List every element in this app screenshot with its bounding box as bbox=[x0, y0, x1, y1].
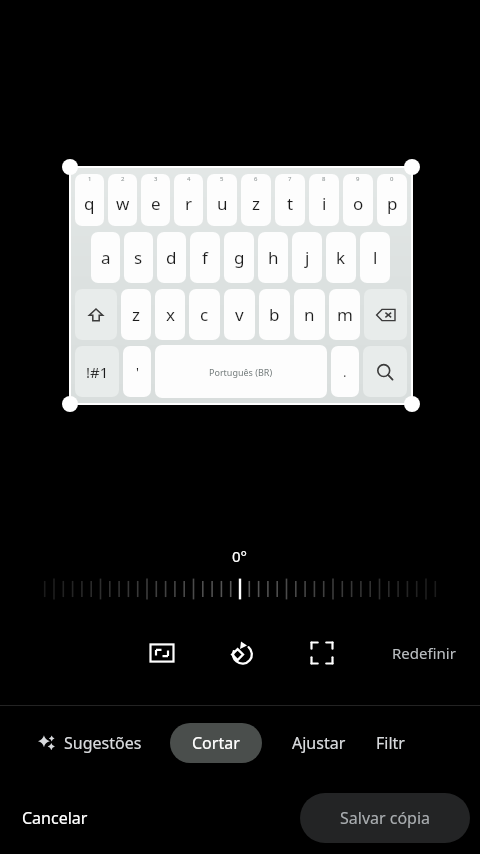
staticText: Ajustar bbox=[292, 732, 346, 754]
staticText: !#1 bbox=[86, 362, 109, 382]
staticText: Sugestões bbox=[64, 732, 142, 754]
other: Search bbox=[376, 363, 394, 381]
staticText: t bbox=[287, 192, 294, 215]
button[interactable]: m bbox=[329, 289, 360, 340]
button[interactable]: 9 bbox=[343, 174, 373, 226]
button[interactable]: 7 bbox=[275, 174, 305, 226]
button[interactable]: h bbox=[258, 232, 288, 283]
staticText: 0° bbox=[232, 546, 248, 566]
button[interactable]: l bbox=[360, 232, 390, 283]
button[interactable]: j bbox=[292, 232, 322, 283]
button[interactable]: !#1 bbox=[75, 346, 119, 397]
button[interactable]: 4 bbox=[174, 174, 203, 226]
button[interactable]: v bbox=[224, 289, 255, 340]
button[interactable]: s bbox=[124, 232, 153, 283]
staticText: w bbox=[116, 192, 130, 215]
staticText: Cortar bbox=[192, 732, 240, 754]
button[interactable]: Auto straighten bbox=[300, 631, 344, 675]
staticText: 2 bbox=[121, 175, 125, 183]
staticText: Salvar cópia bbox=[340, 807, 431, 829]
button[interactable]: Salvar cópia bbox=[300, 793, 470, 843]
staticText: Cancelar bbox=[22, 807, 88, 829]
button[interactable]: Backspace bbox=[364, 289, 407, 340]
staticText: 9 bbox=[356, 175, 360, 183]
staticText: Filtr bbox=[376, 732, 405, 754]
button[interactable]: k bbox=[326, 232, 356, 283]
staticText: d bbox=[166, 246, 177, 269]
staticText: l bbox=[373, 246, 378, 269]
staticText: Português (BR) bbox=[209, 366, 273, 378]
staticText: Redefinir bbox=[392, 643, 456, 663]
staticText: n bbox=[304, 303, 315, 326]
button[interactable]: Português (BR) bbox=[155, 345, 327, 398]
button[interactable]: Cancelar bbox=[10, 797, 100, 839]
staticText: 5 bbox=[220, 175, 224, 183]
button[interactable]: Shift bbox=[75, 289, 117, 340]
button[interactable]: x bbox=[155, 289, 185, 340]
button[interactable]: 6 bbox=[241, 174, 271, 226]
other: Backspace bbox=[376, 305, 396, 325]
staticText: a bbox=[101, 246, 111, 269]
button[interactable]: 0 bbox=[377, 174, 407, 226]
button[interactable]: b bbox=[259, 289, 290, 340]
button[interactable]: 2 bbox=[108, 174, 137, 226]
staticText: b bbox=[269, 303, 280, 326]
button[interactable]: Search bbox=[363, 346, 407, 397]
staticText: g bbox=[234, 246, 245, 269]
staticText: 0 bbox=[390, 175, 394, 183]
button[interactable]: 8 bbox=[309, 174, 339, 226]
button[interactable]: a bbox=[91, 232, 120, 283]
staticText: 7 bbox=[288, 175, 292, 183]
button[interactable]: z bbox=[121, 289, 151, 340]
staticText: c bbox=[200, 303, 209, 326]
button[interactable]: Rotate bbox=[220, 631, 264, 675]
button[interactable]: Cortar bbox=[170, 723, 262, 763]
button[interactable]: ' bbox=[123, 346, 151, 397]
staticText: 8 bbox=[322, 175, 326, 183]
button[interactable]: 5 bbox=[207, 174, 237, 226]
staticText: m bbox=[337, 303, 353, 326]
staticText: k bbox=[336, 246, 346, 269]
staticText: h bbox=[268, 246, 279, 269]
button[interactable]: Ajustar bbox=[284, 723, 354, 763]
staticText: j bbox=[305, 246, 310, 269]
staticText: z bbox=[132, 303, 140, 326]
button[interactable]: n bbox=[294, 289, 325, 340]
staticText: r bbox=[185, 192, 193, 215]
staticText: v bbox=[235, 303, 244, 326]
button[interactable]: Sugestões bbox=[30, 724, 150, 762]
staticText: e bbox=[151, 192, 161, 215]
staticText: p bbox=[387, 192, 398, 215]
staticText: 3 bbox=[154, 175, 158, 183]
button[interactable]: f bbox=[190, 232, 220, 283]
staticText: . bbox=[343, 363, 347, 381]
button[interactable]: g bbox=[224, 232, 254, 283]
button[interactable]: 3 bbox=[141, 174, 170, 226]
button[interactable]: 1 bbox=[75, 174, 104, 226]
other: Shift bbox=[88, 307, 104, 323]
staticText: s bbox=[134, 246, 143, 269]
staticText: ' bbox=[136, 363, 139, 381]
button[interactable]: . bbox=[331, 346, 359, 397]
staticText: o bbox=[353, 192, 364, 215]
staticText: u bbox=[217, 192, 228, 215]
button[interactable]: c bbox=[189, 289, 220, 340]
button[interactable]: d bbox=[157, 232, 186, 283]
staticText: 4 bbox=[187, 175, 191, 183]
button[interactable]: Filtr bbox=[376, 723, 405, 763]
staticText: 1 bbox=[88, 175, 92, 183]
button[interactable]: Redefinir bbox=[380, 635, 468, 671]
staticText: f bbox=[202, 246, 208, 269]
staticText: z bbox=[252, 192, 260, 215]
staticText: 6 bbox=[254, 175, 258, 183]
button[interactable]: Aspect ratio bbox=[140, 631, 184, 675]
staticText: x bbox=[166, 303, 175, 326]
staticText: i bbox=[322, 192, 327, 215]
staticText: q bbox=[84, 192, 95, 215]
